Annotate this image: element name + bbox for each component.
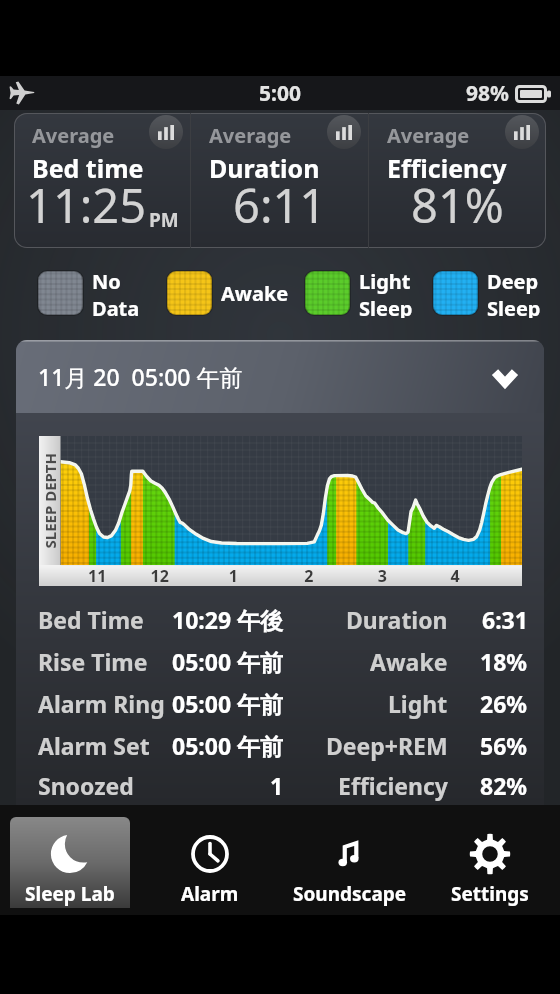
staticText: 82% [480,770,528,801]
staticText: No [92,268,121,295]
button[interactable]: Show chart [505,115,539,149]
staticText: 6:31 [482,604,528,635]
button[interactable]: 11月 20 05:00 午前 [16,340,544,413]
staticText: 05:00 午前 [172,646,284,677]
staticText: Sleep Lab [25,881,115,907]
staticText: Bed time [32,151,144,185]
staticText: 26% [480,688,528,719]
staticText: Settings [451,881,529,907]
staticText: Alarm [181,881,239,907]
staticText: Rise Time [38,646,148,677]
staticText: 11月 20 05:00 午前 [38,361,243,392]
staticText: 56% [480,730,528,761]
button[interactable]: Show chart [149,115,183,149]
staticText: Efficiency [387,151,507,185]
staticText: Average [32,122,115,149]
staticText: 98% [466,79,509,108]
staticText: 1 [270,770,284,801]
staticText: PM [149,207,179,233]
staticText: Soundscape [293,881,407,907]
button[interactable]: Settings [430,817,550,908]
button[interactable]: Average [14,113,190,248]
staticText: 18% [480,646,528,677]
staticText: 11:25 [26,173,147,237]
button[interactable]: Average [369,113,546,248]
staticText: 05:00 午前 [172,730,284,761]
staticText: Alarm Ring [38,688,164,719]
staticText: Sleep [359,295,413,318]
staticText: Duration [209,151,320,185]
staticText: Light [388,688,448,719]
staticText: 5:00 [259,79,301,108]
staticText: Deep+REM [326,730,448,761]
staticText: 05:00 午前 [172,688,284,719]
staticText: Bed Time [38,604,144,635]
staticText: Sleep [487,295,541,318]
staticText: 81% [411,173,504,237]
staticText: Awake [370,646,448,677]
staticText: Data [92,295,140,318]
staticText: Deep [487,268,539,295]
staticText: 6:11 [233,173,327,237]
staticText: Awake [221,280,289,307]
staticText: Duration [346,604,448,635]
button[interactable]: Sleep Lab [10,817,130,908]
button[interactable]: Show chart [327,115,361,149]
staticText: Alarm Set [38,730,150,761]
staticText: Average [209,122,292,149]
staticText: Snoozed [38,770,134,801]
staticText: 10:29 午後 [172,604,284,635]
button[interactable]: Soundscape [290,817,410,908]
button[interactable]: Average [191,113,368,248]
button[interactable]: Alarm [150,817,270,908]
button[interactable]: Collapse [488,360,522,394]
staticText: Light [359,268,411,295]
staticText: Efficiency [338,770,448,801]
staticText: Average [387,122,470,149]
